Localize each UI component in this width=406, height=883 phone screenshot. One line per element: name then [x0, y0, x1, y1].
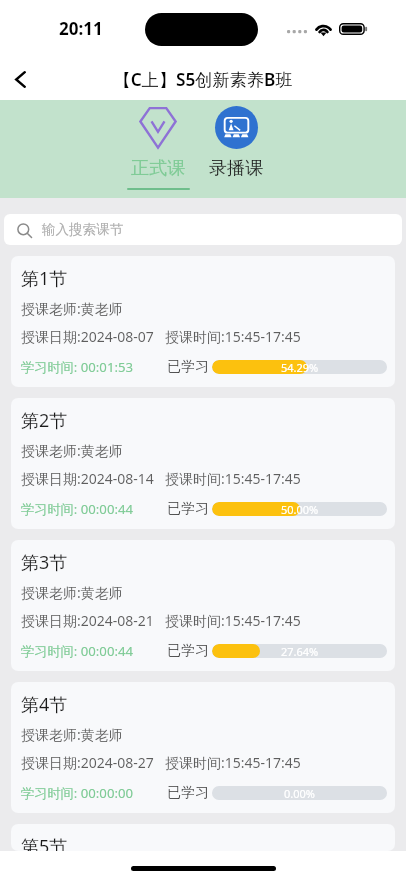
staticText: 授课老师:黄老师: [21, 299, 123, 318]
staticText: 授课老师:黄老师: [21, 583, 123, 602]
button[interactable]: Back: [0, 56, 44, 100]
staticText: 学习时间: 00:00:44: [21, 642, 134, 660]
staticText: 授课日期:2024-08-07: [21, 327, 154, 346]
staticText: 学习时间: 00:00:44: [21, 500, 134, 518]
staticText: 0.00%: [284, 786, 315, 800]
staticText: 第4节: [21, 692, 68, 717]
staticText: 正式课: [131, 157, 185, 180]
staticText: 授课时间:15:45-17:45: [165, 327, 301, 346]
button[interactable]: 正式课: [120, 100, 196, 198]
staticText: 授课日期:2024-08-27: [21, 753, 154, 772]
staticText: 第3节: [21, 550, 68, 575]
staticText: 已学习: [167, 642, 209, 660]
staticText: 已学习: [167, 500, 209, 518]
staticText: 授课日期:2024-08-21: [21, 611, 154, 630]
staticText: 第5节: [21, 834, 68, 851]
button[interactable]: 输入搜索课节: [4, 214, 402, 245]
button[interactable]: 第3节: [11, 540, 395, 671]
button[interactable]: 第1节: [11, 256, 395, 387]
staticText: 54.29%: [281, 360, 319, 374]
button[interactable]: 第2节: [11, 398, 395, 529]
staticText: 授课老师:黄老师: [21, 441, 123, 460]
staticText: 50.00%: [281, 502, 319, 516]
staticText: 输入搜索课节: [42, 221, 123, 238]
staticText: 已学习: [167, 784, 209, 802]
staticText: 已学习: [167, 358, 209, 376]
staticText: 20:11: [59, 17, 103, 40]
button[interactable]: 第4节: [11, 682, 395, 813]
staticText: 授课时间:15:45-17:45: [165, 753, 301, 772]
staticText: 学习时间: 00:00:00: [21, 784, 134, 802]
staticText: 授课时间:15:45-17:45: [165, 611, 301, 630]
staticText: 授课时间:15:45-17:45: [165, 469, 301, 488]
staticText: 授课老师:黄老师: [21, 725, 123, 744]
staticText: 授课日期:2024-08-14: [21, 469, 154, 488]
staticText: 27.64%: [281, 644, 319, 658]
staticText: 学习时间: 00:01:53: [21, 358, 134, 376]
staticText: 第2节: [21, 408, 68, 433]
button[interactable]: 录播课: [198, 100, 274, 198]
staticText: 第1节: [21, 266, 68, 291]
staticText: 录播课: [209, 157, 263, 180]
button[interactable]: 第5节: [11, 824, 395, 851]
staticText: 【C上】S5创新素养B班: [113, 68, 293, 91]
